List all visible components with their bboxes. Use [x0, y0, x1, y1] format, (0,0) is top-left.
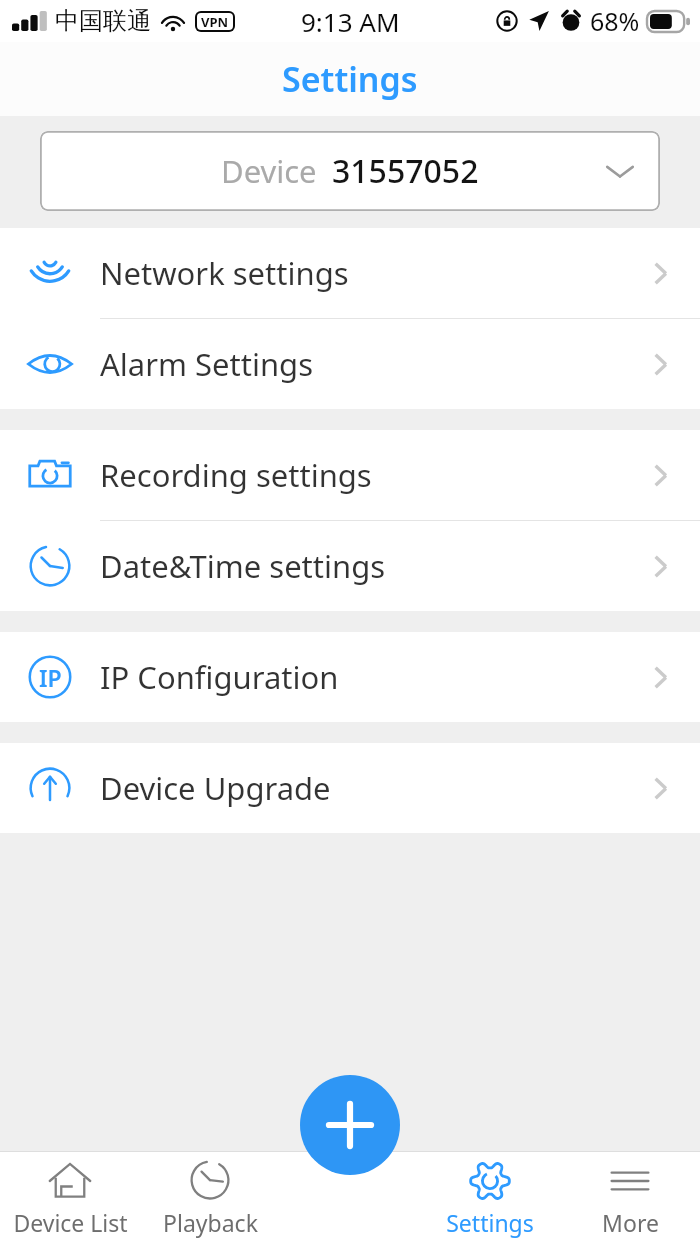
button[interactable]: Device Upgrade: [0, 743, 700, 833]
staticText: Settings: [446, 1207, 534, 1238]
button[interactable]: Device List: [0, 1152, 140, 1244]
staticText: 9:13 AM: [301, 4, 400, 39]
staticText: Device: [221, 150, 317, 192]
button[interactable]: Settings: [420, 1152, 560, 1244]
staticText: VPN: [201, 13, 229, 30]
button[interactable]: Recording settings: [0, 430, 700, 520]
button[interactable]: Add device: [300, 1075, 400, 1175]
staticText: More: [602, 1207, 659, 1238]
staticText: Recording settings: [100, 454, 372, 496]
staticText: Settings: [282, 56, 418, 102]
staticText: Network settings: [100, 252, 349, 294]
staticText: IP: [39, 662, 62, 693]
staticText: Alarm Settings: [100, 343, 314, 385]
button[interactable]: Alarm Settings: [0, 319, 700, 409]
staticText: 31557052: [332, 149, 479, 193]
button[interactable]: IP: [0, 632, 700, 722]
staticText: Date&Time settings: [100, 545, 386, 587]
button[interactable]: Device: [40, 131, 660, 211]
staticText: Device List: [13, 1207, 128, 1238]
button[interactable]: More: [560, 1152, 700, 1244]
staticText: 中国联通: [55, 6, 151, 36]
button[interactable]: Playback: [140, 1152, 280, 1244]
staticText: IP Configuration: [100, 656, 339, 698]
staticText: 68%: [590, 4, 640, 38]
staticText: Device Upgrade: [100, 767, 331, 809]
staticText: Playback: [163, 1207, 258, 1238]
button[interactable]: Date&Time settings: [0, 521, 700, 611]
button[interactable]: Network settings: [0, 228, 700, 318]
